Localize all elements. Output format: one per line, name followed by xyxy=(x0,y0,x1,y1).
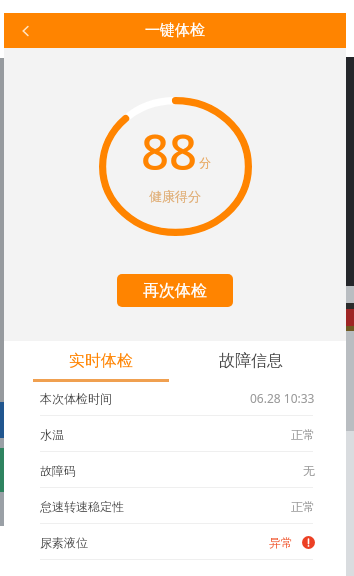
button[interactable]: 实时体检 xyxy=(26,341,176,380)
staticText: 健康得分 xyxy=(149,188,201,204)
button[interactable]: 水温 xyxy=(4,416,346,452)
button[interactable]: 本次体检时间 xyxy=(4,380,346,416)
staticText: 尿素液位 xyxy=(40,535,88,550)
staticText: 水温 xyxy=(40,427,64,442)
staticText: 正常 xyxy=(291,427,315,442)
button[interactable]: Back xyxy=(4,13,48,48)
staticText: 一键体检 xyxy=(145,21,205,40)
button[interactable]: 再次体检 xyxy=(117,274,233,307)
staticText: 故障信息 xyxy=(219,351,283,371)
button[interactable]: 故障信息 xyxy=(176,341,326,380)
staticText: 怠速转速稳定性 xyxy=(40,499,124,514)
staticText: 故障码 xyxy=(40,463,76,478)
staticText: 异常 xyxy=(269,535,293,550)
staticText: 分 xyxy=(199,155,211,170)
staticText: 实时体检 xyxy=(69,351,133,371)
button[interactable]: 怠速转速稳定性 xyxy=(4,488,346,524)
staticText: 06.28 10:33 xyxy=(250,390,315,406)
staticText: 正常 xyxy=(291,499,315,514)
staticText: 本次体检时间 xyxy=(40,391,112,406)
staticText: 再次体检 xyxy=(143,281,207,301)
button[interactable]: 尿素液位 xyxy=(4,524,346,560)
staticText: 无 xyxy=(303,463,315,478)
staticText: 88 xyxy=(141,118,198,185)
button[interactable]: 故障码 xyxy=(4,452,346,488)
